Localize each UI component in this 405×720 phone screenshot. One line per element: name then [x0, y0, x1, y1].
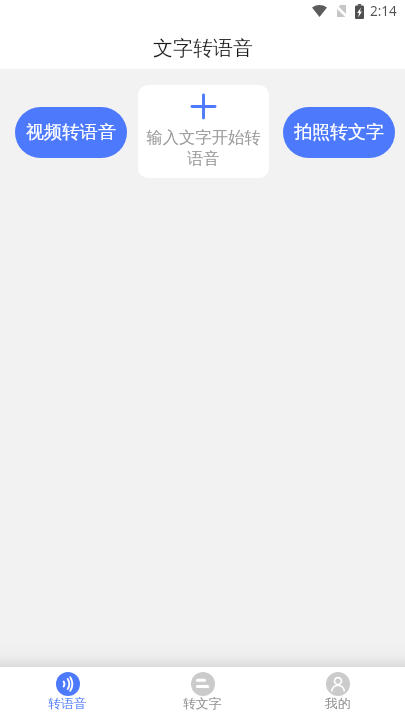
staticText: 视频转语音	[26, 121, 116, 144]
staticText: 转语音	[48, 696, 87, 712]
staticText: 输入文字开始转语音	[143, 127, 264, 169]
staticText: 文字转语音	[153, 36, 253, 61]
button[interactable]: 转文字	[135, 667, 270, 720]
button[interactable]: 输入文字开始转语音	[138, 85, 269, 178]
staticText: 转文字	[183, 696, 222, 712]
staticText: 拍照转文字	[294, 121, 384, 144]
button[interactable]: 拍照转文字	[283, 107, 395, 158]
staticText: 我的	[325, 696, 351, 712]
button[interactable]: 我的	[270, 667, 405, 720]
staticText: 2:14	[370, 2, 397, 20]
button[interactable]: 转语音	[0, 667, 135, 720]
button[interactable]: 视频转语音	[15, 107, 127, 158]
